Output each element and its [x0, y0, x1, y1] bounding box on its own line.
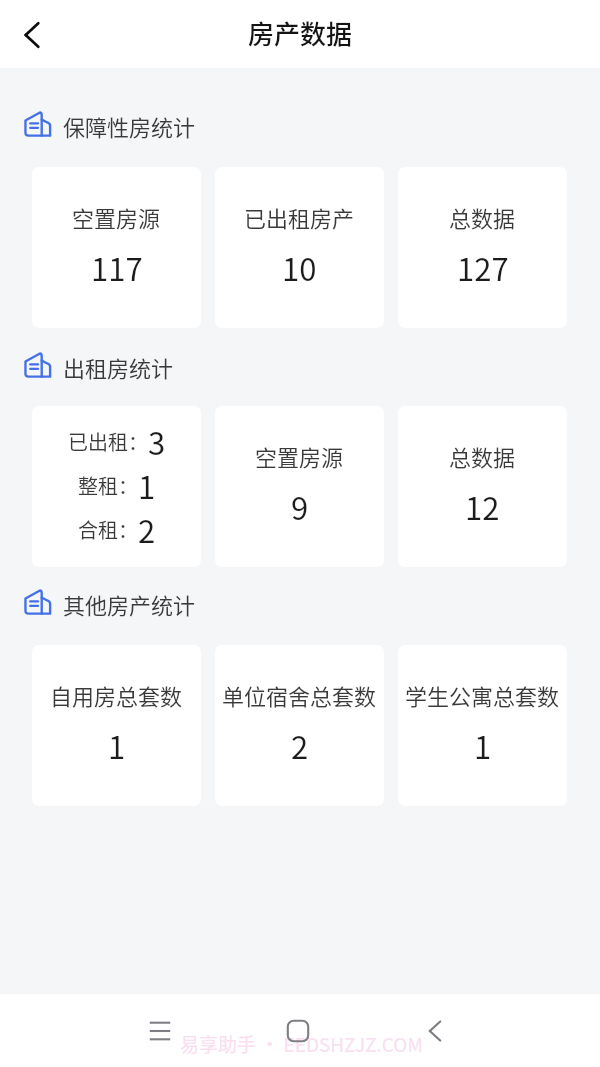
- staticText: 127: [457, 245, 509, 290]
- button[interactable]: 单位宿舍总套数: [215, 645, 384, 806]
- button[interactable]: 空置房源: [215, 406, 384, 567]
- staticText: 9: [291, 484, 309, 529]
- staticText: 已出租：: [68, 427, 148, 456]
- staticText: 117: [91, 245, 143, 290]
- staticText: 2: [138, 507, 156, 551]
- staticText: 保障性房统计: [63, 110, 196, 140]
- button[interactable]: 学生公寓总套数: [398, 645, 567, 806]
- staticText: 2: [291, 723, 309, 768]
- staticText: 12: [465, 484, 500, 529]
- staticText: 整租：: [78, 471, 138, 500]
- button[interactable]: Recent apps: [137, 1008, 183, 1054]
- staticText: 1: [474, 723, 492, 768]
- staticText: 房产数据: [248, 14, 353, 52]
- button[interactable]: Back: [8, 11, 56, 59]
- button[interactable]: 空置房源: [32, 167, 201, 328]
- staticText: 自用房总套数: [50, 679, 183, 711]
- staticText: 已出租房产: [244, 201, 355, 233]
- staticText: 其他房产统计: [63, 588, 196, 618]
- staticText: 1: [108, 723, 126, 768]
- staticText: 空置房源: [255, 440, 344, 472]
- staticText: 3: [148, 419, 166, 463]
- button[interactable]: 自用房总套数: [32, 645, 201, 806]
- button[interactable]: Back: [412, 1008, 458, 1054]
- button[interactable]: 总数据: [398, 167, 567, 328]
- staticText: 10: [282, 245, 317, 290]
- staticText: 1: [138, 463, 156, 507]
- button[interactable]: Home: [275, 1008, 321, 1054]
- button[interactable]: 已出租：: [32, 406, 201, 567]
- staticText: 总数据: [449, 201, 516, 233]
- button[interactable]: 总数据: [398, 406, 567, 567]
- staticText: 出租房统计: [63, 351, 174, 381]
- staticText: 合租：: [78, 515, 138, 544]
- staticText: 单位宿舍总套数: [222, 679, 377, 711]
- staticText: 总数据: [449, 440, 516, 472]
- staticText: 易享助手 · EEDSHZJZ.COM: [180, 1030, 423, 1058]
- staticText: 学生公寓总套数: [405, 679, 560, 711]
- button[interactable]: 已出租房产: [215, 167, 384, 328]
- staticText: 空置房源: [72, 201, 161, 233]
